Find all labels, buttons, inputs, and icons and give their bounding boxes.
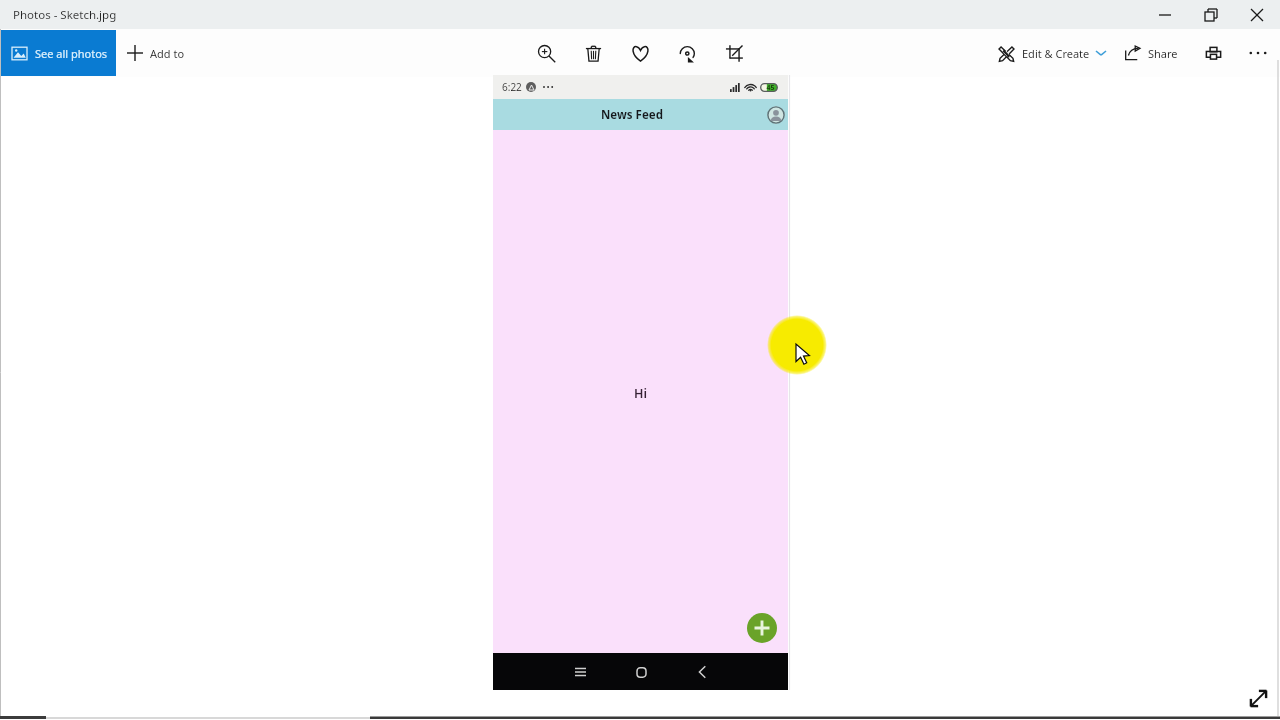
button[interactable]: More options — [1241, 36, 1275, 70]
staticText: Share — [1148, 46, 1178, 61]
button[interactable]: Print — [1196, 36, 1230, 70]
button[interactable]: Minimize — [1142, 0, 1188, 29]
button[interactable]: Recents — [565, 657, 595, 687]
button[interactable]: Crop — [711, 29, 758, 77]
button[interactable]: Account — [766, 105, 785, 124]
button[interactable]: Restore — [1188, 0, 1234, 29]
button[interactable]: Back — [687, 657, 717, 687]
button[interactable]: Add — [747, 613, 777, 643]
staticText: Hi — [634, 385, 647, 402]
button[interactable]: Add to — [127, 29, 185, 77]
button[interactable]: Favorite — [617, 29, 664, 77]
button[interactable]: See all photos — [0, 30, 116, 76]
button[interactable]: Home — [626, 657, 656, 687]
staticText: See all photos — [35, 46, 108, 61]
button[interactable]: Rotate — [664, 29, 711, 77]
staticText: Photos - Sketch.jpg — [13, 7, 117, 23]
staticText: 45 — [766, 83, 775, 92]
staticText: 6:22 — [502, 80, 522, 94]
button[interactable]: Share — [1121, 29, 1181, 77]
staticText: Edit & Create — [1022, 46, 1090, 61]
staticText: News Feed — [601, 107, 663, 123]
button[interactable]: Delete — [570, 29, 617, 77]
button[interactable]: Edit & Create — [995, 29, 1109, 77]
button[interactable]: Full screen — [1244, 684, 1272, 712]
button[interactable]: Zoom — [523, 29, 570, 77]
button[interactable]: Close — [1234, 0, 1280, 29]
staticText: Add to — [150, 46, 185, 61]
